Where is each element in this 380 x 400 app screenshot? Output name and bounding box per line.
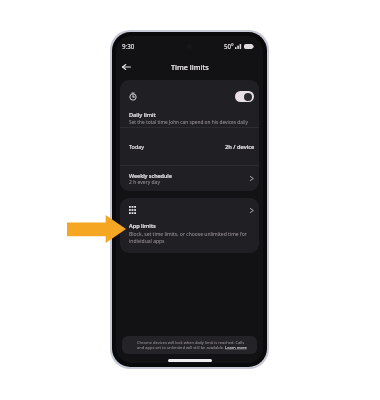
staticText: App limits [129, 222, 156, 230]
staticText: Set the total time John can spend on his… [129, 119, 248, 126]
button[interactable]: Today [120, 128, 259, 165]
staticText: 9:30 [122, 42, 135, 50]
button[interactable]: App limits [120, 198, 259, 253]
staticText: Weekly schedule [129, 172, 172, 179]
staticText: Daily limit [129, 111, 156, 119]
button[interactable]: Back [118, 59, 134, 75]
button[interactable]: Daily limit toggle [120, 80, 259, 127]
staticText: Chrome devices will lock when daily limi… [137, 340, 247, 350]
staticText: Today [129, 143, 144, 150]
staticText: 50° [224, 42, 234, 50]
staticText: Time limits [171, 62, 209, 72]
button[interactable]: Weekly schedule [120, 166, 259, 191]
button[interactable]: Daily limit toggle [235, 91, 254, 102]
staticText: Block, set time limits, or choose unlimi… [129, 231, 247, 245]
staticText: 2h / device [225, 143, 255, 151]
staticText: 2 h every day [129, 179, 160, 186]
button[interactable]: Chrome devices will lock when daily limi… [122, 336, 257, 354]
